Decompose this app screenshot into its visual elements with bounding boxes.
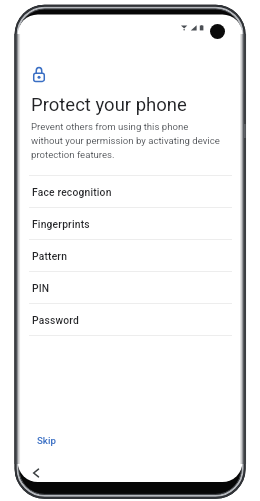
staticText: Fingerprints bbox=[32, 218, 90, 230]
button[interactable]: Password bbox=[18, 304, 243, 336]
staticText: Face recognition bbox=[32, 186, 112, 198]
button[interactable]: Fingerprints bbox=[18, 208, 243, 240]
staticText: PIN bbox=[32, 282, 50, 294]
button[interactable]: Pattern bbox=[18, 240, 243, 272]
button[interactable]: Skip bbox=[32, 430, 61, 451]
button[interactable]: Back bbox=[27, 464, 45, 482]
staticText: Protect your phone bbox=[31, 94, 187, 116]
staticText: Pattern bbox=[32, 250, 68, 262]
button[interactable]: PIN bbox=[18, 272, 243, 304]
staticText: Password bbox=[32, 314, 79, 326]
button[interactable]: Face recognition bbox=[18, 176, 243, 208]
staticText: Skip bbox=[37, 435, 56, 446]
staticText: Prevent others from using this phone wit… bbox=[31, 121, 222, 161]
